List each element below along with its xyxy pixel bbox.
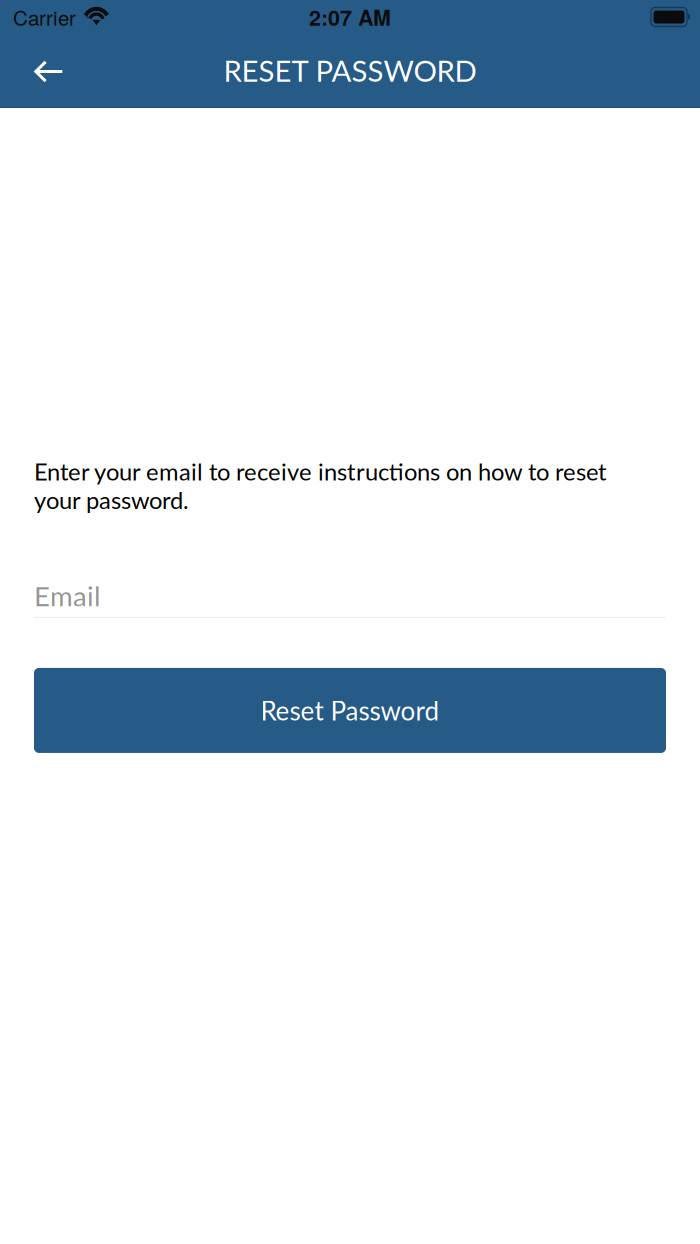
staticText: Reset Password	[260, 695, 439, 726]
staticText: Enter your email to receive instructions…	[34, 457, 607, 514]
staticText: 2:07 AM	[309, 2, 391, 32]
staticText: RESET PASSWORD	[223, 53, 476, 88]
button[interactable]: Email	[34, 574, 666, 618]
button[interactable]: Reset Password	[34, 668, 666, 753]
staticText: Email	[34, 579, 101, 612]
staticText: Carrier	[13, 2, 76, 32]
button[interactable]: Back	[18, 42, 80, 98]
